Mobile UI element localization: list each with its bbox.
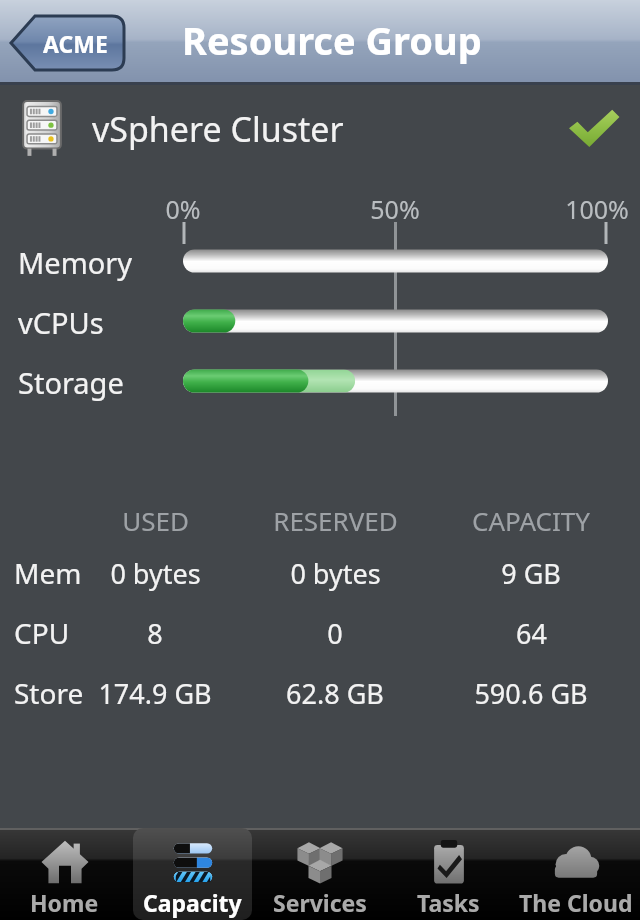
staticText: USED: [122, 503, 189, 538]
staticText: 64: [516, 615, 547, 652]
staticText: Memory: [18, 243, 133, 282]
staticText: Home: [30, 887, 99, 918]
other: Healthy: [568, 109, 620, 149]
staticText: CAPACITY: [472, 503, 590, 538]
staticText: 100%: [565, 192, 629, 226]
staticText: 0 bytes: [110, 555, 201, 592]
staticText: vSphere Cluster: [92, 106, 344, 152]
staticText: Storage: [18, 363, 124, 402]
button[interactable]: vSphere Cluster: [0, 88, 640, 170]
button[interactable]: Home: [0, 828, 128, 920]
staticText: Resource Group: [182, 14, 482, 66]
staticText: 50%: [370, 192, 420, 226]
staticText: 174.9 GB: [98, 675, 212, 712]
staticText: CPU: [14, 614, 70, 652]
staticText: Services: [273, 887, 367, 918]
button[interactable]: Services: [256, 828, 384, 920]
button[interactable]: The Cloud: [512, 828, 640, 920]
staticText: Capacity: [143, 887, 242, 918]
staticText: Store: [14, 674, 84, 712]
staticText: The Cloud: [519, 887, 633, 918]
staticText: RESERVED: [273, 503, 398, 538]
button[interactable]: Mem: [0, 550, 640, 596]
staticText: 0%: [165, 192, 201, 226]
staticText: 590.6 GB: [474, 675, 588, 712]
staticText: Mem: [14, 554, 82, 592]
staticText: 8: [147, 615, 163, 652]
staticText: 62.8 GB: [286, 675, 384, 712]
button[interactable]: CPU: [0, 610, 640, 656]
button[interactable]: Capacity: [128, 828, 256, 920]
staticText: 0: [327, 615, 343, 652]
button[interactable]: Tasks: [384, 828, 512, 920]
staticText: 0 bytes: [290, 555, 381, 592]
button[interactable]: Back to ACME: [8, 14, 126, 72]
button[interactable]: Store: [0, 670, 640, 716]
staticText: ACME: [43, 28, 108, 59]
staticText: 9 GB: [501, 555, 561, 592]
staticText: Tasks: [417, 887, 480, 918]
staticText: vCPUs: [18, 303, 104, 342]
